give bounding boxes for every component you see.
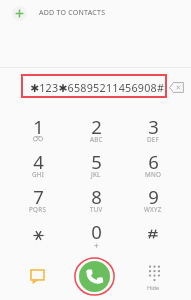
staticText: JKL xyxy=(91,170,101,179)
staticText: ✱123✱65895211456908# xyxy=(30,80,165,95)
staticText: WXYZ xyxy=(144,205,162,214)
staticText: TUV xyxy=(90,205,103,214)
button[interactable]: Message xyxy=(22,261,52,291)
button[interactable]: 6 xyxy=(124,145,182,178)
staticText: MNO xyxy=(145,170,162,179)
staticText: 1 xyxy=(33,114,44,139)
button[interactable]: 5 xyxy=(67,145,125,178)
staticText: 4 xyxy=(33,149,44,174)
button[interactable]: 8 xyxy=(67,180,125,213)
button[interactable]: 3 xyxy=(124,110,182,143)
staticText: + xyxy=(94,240,99,251)
button[interactable]: 4 xyxy=(9,145,67,178)
button[interactable]: ADD TO CONTACTS xyxy=(0,0,191,26)
staticText: PQRS xyxy=(29,205,47,214)
staticText: 6 xyxy=(148,149,159,174)
staticText: 8 xyxy=(91,184,102,209)
staticText: DEF xyxy=(147,135,160,144)
button[interactable]: 1 xyxy=(9,110,67,143)
button[interactable] xyxy=(9,215,67,248)
staticText: 7 xyxy=(33,184,44,209)
staticText: 9 xyxy=(148,184,159,209)
button[interactable] xyxy=(124,215,182,248)
staticText: 3 xyxy=(148,114,159,139)
button[interactable]: 9 xyxy=(124,180,182,213)
staticText: 5 xyxy=(91,149,102,174)
button[interactable]: Hide xyxy=(138,260,169,294)
button[interactable]: Backspace xyxy=(169,82,184,93)
staticText: ADD TO CONTACTS xyxy=(39,8,106,18)
button[interactable]: 7 xyxy=(9,180,67,213)
staticText: GHI xyxy=(32,170,45,179)
staticText: ABC xyxy=(90,135,103,144)
button[interactable]: 2 xyxy=(67,110,125,143)
button[interactable]: 0 xyxy=(67,215,125,248)
staticText: 2 xyxy=(91,114,102,139)
staticText: 0 xyxy=(91,219,102,244)
button[interactable]: Call xyxy=(79,261,110,292)
staticText: Hide xyxy=(147,284,160,292)
